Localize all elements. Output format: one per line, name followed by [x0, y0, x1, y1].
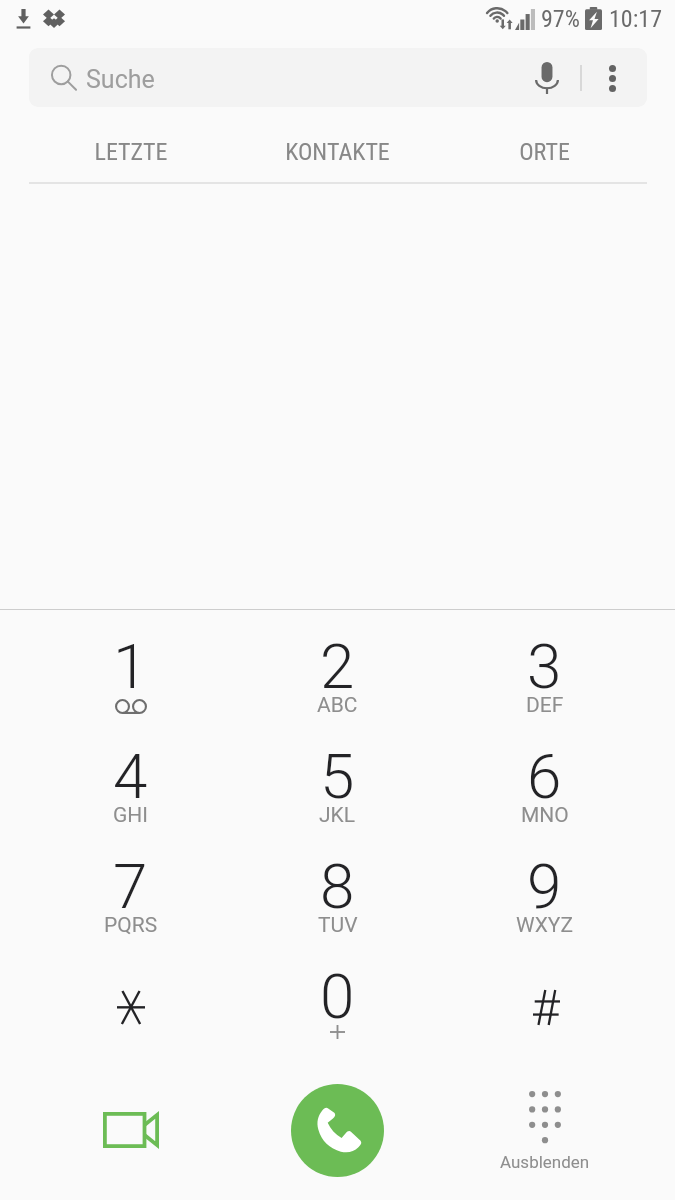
staticText: JKL — [319, 803, 356, 828]
staticText: TUV — [318, 913, 358, 938]
staticText: 0 — [320, 960, 355, 1033]
staticText: ORTE — [519, 138, 570, 166]
staticText: MNO — [521, 803, 569, 828]
button[interactable] — [27, 940, 234, 1050]
button[interactable]: 7 — [27, 830, 234, 940]
staticText: 1 — [113, 630, 148, 703]
staticText: 2 — [320, 630, 355, 703]
staticText: 4 — [113, 740, 148, 813]
staticText: ABC — [317, 693, 358, 718]
staticText: 97% — [541, 5, 580, 33]
staticText: 9 — [527, 850, 562, 923]
button[interactable]: 8 — [234, 830, 441, 940]
staticText: DEF — [526, 693, 564, 718]
button[interactable]: 0 — [234, 940, 441, 1050]
staticText: 6 — [527, 740, 562, 813]
button[interactable]: ORTE — [441, 119, 648, 185]
button[interactable]: 6 — [441, 720, 648, 830]
button[interactable]: Suche — [29, 48, 647, 107]
staticText: 3 — [527, 630, 562, 703]
button[interactable]: 1 — [27, 610, 234, 720]
button[interactable]: Hide keypad — [441, 1070, 648, 1190]
button[interactable]: Video call — [27, 1070, 234, 1190]
button[interactable]: More options — [588, 52, 638, 102]
button[interactable]: 4 — [27, 720, 234, 830]
button[interactable]: 9 — [441, 830, 648, 940]
staticText: 10:17 — [609, 5, 662, 33]
staticText: GHI — [113, 803, 148, 828]
button[interactable] — [441, 940, 648, 1050]
button[interactable]: 3 — [441, 610, 648, 720]
staticText: WXYZ — [516, 913, 573, 938]
staticText: Ausblenden — [500, 1152, 590, 1172]
button[interactable]: KONTAKTE — [234, 119, 441, 185]
staticText: Suche — [86, 65, 155, 94]
staticText: 8 — [320, 850, 355, 923]
staticText: 7 — [113, 850, 148, 923]
button[interactable]: 2 — [234, 610, 441, 720]
button[interactable]: Voice search — [518, 52, 576, 107]
staticText: 5 — [320, 740, 355, 813]
staticText: PQRS — [104, 913, 158, 938]
button[interactable]: 5 — [234, 720, 441, 830]
staticText: KONTAKTE — [285, 138, 390, 166]
staticText: LETZTE — [94, 138, 168, 166]
button[interactable]: LETZTE — [27, 119, 234, 185]
button[interactable]: Call — [291, 1084, 384, 1177]
